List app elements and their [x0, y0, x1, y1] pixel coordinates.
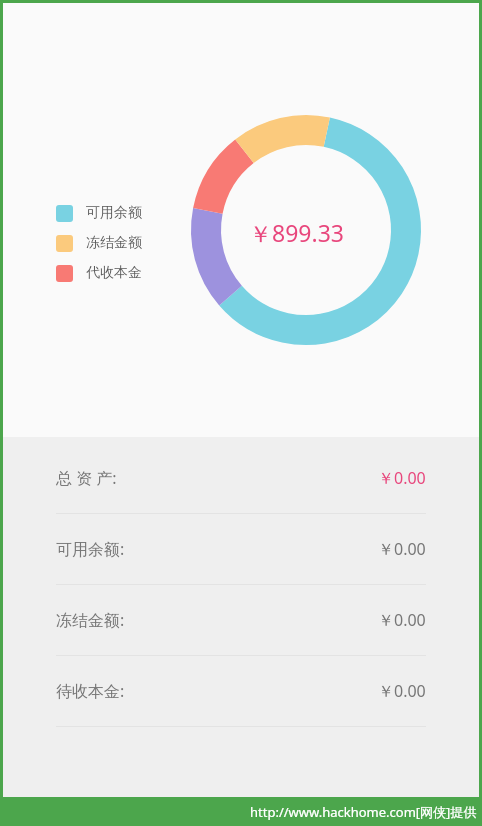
button[interactable]: 冻结金额: — [3, 585, 479, 655]
staticText: ￥0.00 — [378, 680, 426, 702]
staticText: 冻结金额: — [56, 609, 125, 631]
button[interactable]: 可用余额: — [3, 514, 479, 584]
button[interactable]: 代收本金 — [56, 262, 142, 284]
staticText: 可用余额: — [56, 538, 125, 560]
staticText: http://www.hackhome.com[网侠]提供 — [250, 803, 477, 821]
staticText: 总 资 产: — [56, 467, 117, 489]
staticText: ￥0.00 — [378, 609, 426, 631]
button[interactable]: 待收本金: — [3, 656, 479, 726]
staticText: 可用余额 — [86, 204, 142, 222]
staticText: 待收本金: — [56, 680, 125, 702]
staticText: ￥899.33 — [249, 217, 344, 248]
button[interactable]: 可用余额 — [56, 202, 142, 224]
button[interactable]: 总 资 产: — [3, 443, 479, 513]
staticText: ￥0.00 — [378, 538, 426, 560]
staticText: 代收本金 — [86, 264, 142, 282]
button[interactable]: 冻结金额 — [56, 232, 142, 254]
staticText: 冻结金额 — [86, 234, 142, 252]
staticText: ￥0.00 — [378, 467, 426, 489]
